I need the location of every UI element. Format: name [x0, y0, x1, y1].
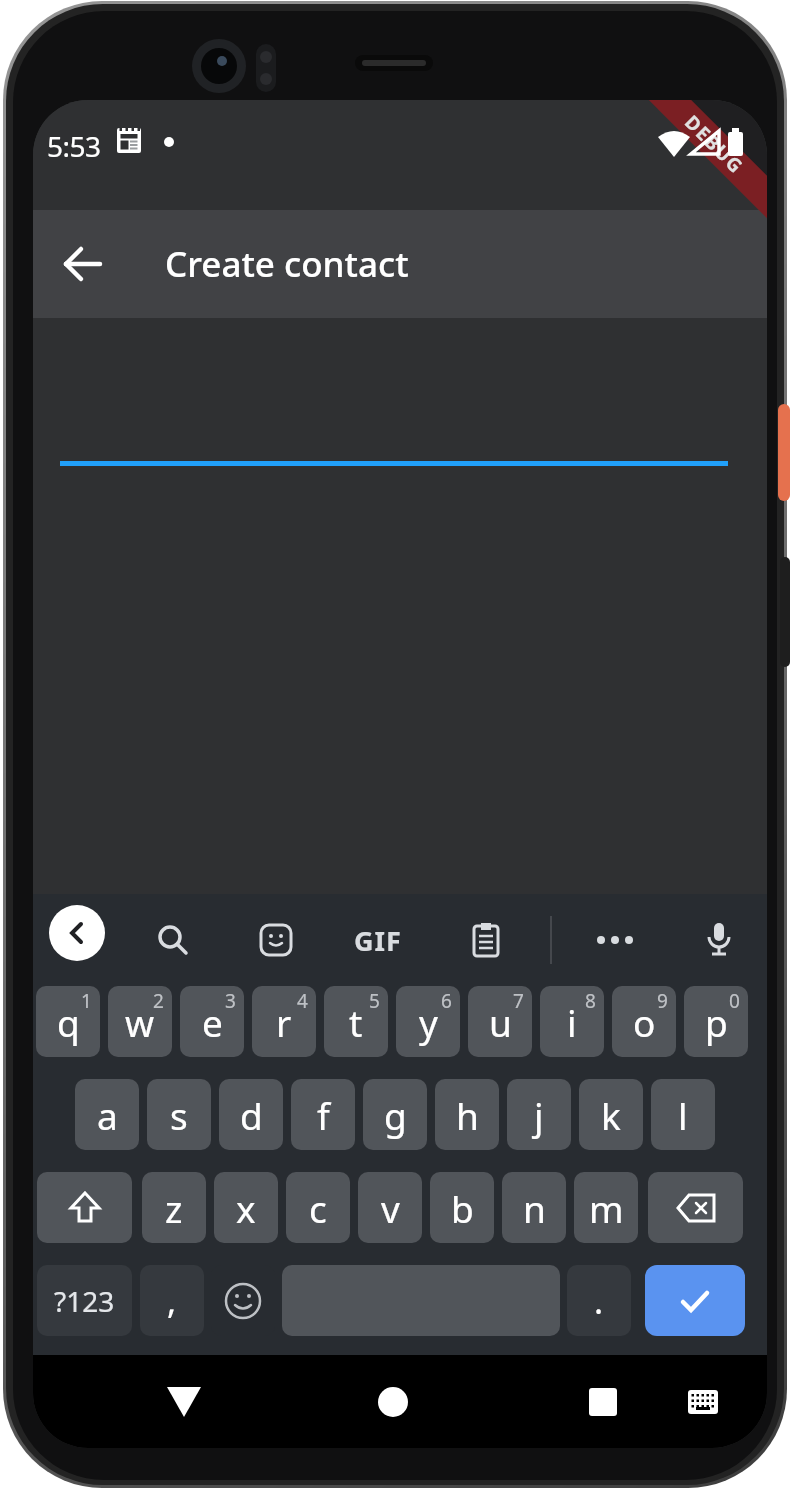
staticText: d — [240, 1090, 263, 1140]
staticText: k — [601, 1090, 621, 1140]
staticText: Create contact — [165, 240, 409, 288]
button[interactable]: l — [651, 1079, 715, 1150]
staticText: , — [167, 1278, 177, 1324]
button[interactable] — [553, 1355, 653, 1448]
staticText: v — [381, 1183, 400, 1233]
button[interactable]: d — [219, 1079, 283, 1150]
staticText: 1 — [81, 988, 92, 1014]
staticText: 3 — [225, 988, 236, 1014]
button[interactable] — [211, 1265, 275, 1336]
button[interactable]: f — [291, 1079, 355, 1150]
staticText: g — [384, 1090, 407, 1140]
staticText: l — [678, 1090, 688, 1140]
button[interactable] — [37, 1172, 132, 1243]
button[interactable]: g — [363, 1079, 427, 1150]
button[interactable]: h — [435, 1079, 499, 1150]
staticText: 9 — [657, 988, 668, 1014]
staticText: z — [165, 1183, 183, 1233]
staticText: 5 — [369, 988, 380, 1014]
staticText: 7 — [513, 988, 524, 1014]
button[interactable]: a — [75, 1079, 139, 1150]
button[interactable]: j — [507, 1079, 571, 1150]
button[interactable] — [141, 894, 205, 986]
button[interactable]: q — [36, 986, 100, 1057]
button[interactable]: w — [108, 986, 172, 1057]
button[interactable]: c — [286, 1172, 350, 1243]
staticText: 4 — [297, 988, 308, 1014]
button[interactable]: m — [574, 1172, 638, 1243]
staticText: 0 — [729, 988, 740, 1014]
button[interactable]: x — [214, 1172, 278, 1243]
staticText: p — [705, 997, 728, 1047]
button[interactable]: . — [567, 1265, 631, 1336]
button[interactable] — [663, 1355, 743, 1448]
staticText: ?123 — [54, 1282, 115, 1320]
button[interactable]: y — [396, 986, 460, 1057]
staticText: e — [202, 997, 223, 1047]
button[interactable] — [454, 894, 518, 986]
button[interactable]: p — [684, 986, 748, 1057]
staticText: m — [589, 1183, 624, 1233]
button[interactable] — [134, 1355, 234, 1448]
button[interactable]: r — [252, 986, 316, 1057]
staticText: c — [309, 1183, 327, 1233]
staticText: y — [419, 997, 438, 1047]
staticText: n — [523, 1183, 546, 1233]
staticText: u — [489, 997, 512, 1047]
staticText: a — [97, 1090, 118, 1140]
staticText: 2 — [153, 988, 164, 1014]
staticText: o — [633, 997, 656, 1047]
staticText: r — [276, 997, 292, 1047]
button[interactable]: n — [502, 1172, 566, 1243]
staticText: 5:53 — [47, 127, 101, 159]
staticText: w — [125, 997, 155, 1047]
staticText: i — [567, 997, 577, 1047]
button[interactable]: b — [430, 1172, 494, 1243]
button[interactable] — [33, 210, 133, 318]
staticText: . — [594, 1278, 604, 1324]
staticText: GIF — [354, 922, 402, 959]
button[interactable] — [645, 1265, 745, 1336]
button[interactable] — [49, 905, 105, 961]
button[interactable] — [583, 894, 647, 986]
button[interactable]: z — [142, 1172, 206, 1243]
staticText: t — [349, 997, 363, 1047]
staticText: j — [534, 1090, 544, 1140]
staticText: DEBUG — [679, 109, 749, 179]
button[interactable]: e — [180, 986, 244, 1057]
button[interactable]: v — [358, 1172, 422, 1243]
button[interactable]: s — [147, 1079, 211, 1150]
button[interactable]: t — [324, 986, 388, 1057]
staticText: 8 — [585, 988, 596, 1014]
button[interactable] — [687, 894, 751, 986]
staticText: 6 — [441, 988, 452, 1014]
button[interactable] — [244, 894, 308, 986]
button[interactable]: , — [140, 1265, 204, 1336]
button[interactable] — [648, 1172, 743, 1243]
staticText: b — [451, 1183, 474, 1233]
staticText: s — [170, 1090, 188, 1140]
staticText: f — [317, 1090, 330, 1140]
button[interactable]: GIF — [323, 894, 433, 986]
staticText: x — [236, 1183, 256, 1233]
button[interactable]: o — [612, 986, 676, 1057]
button[interactable]: k — [579, 1079, 643, 1150]
staticText: q — [57, 997, 80, 1047]
button[interactable]: ?123 — [37, 1265, 132, 1336]
staticText: h — [456, 1090, 479, 1140]
button[interactable]: i — [540, 986, 604, 1057]
button[interactable]: u — [468, 986, 532, 1057]
button[interactable] — [343, 1355, 443, 1448]
